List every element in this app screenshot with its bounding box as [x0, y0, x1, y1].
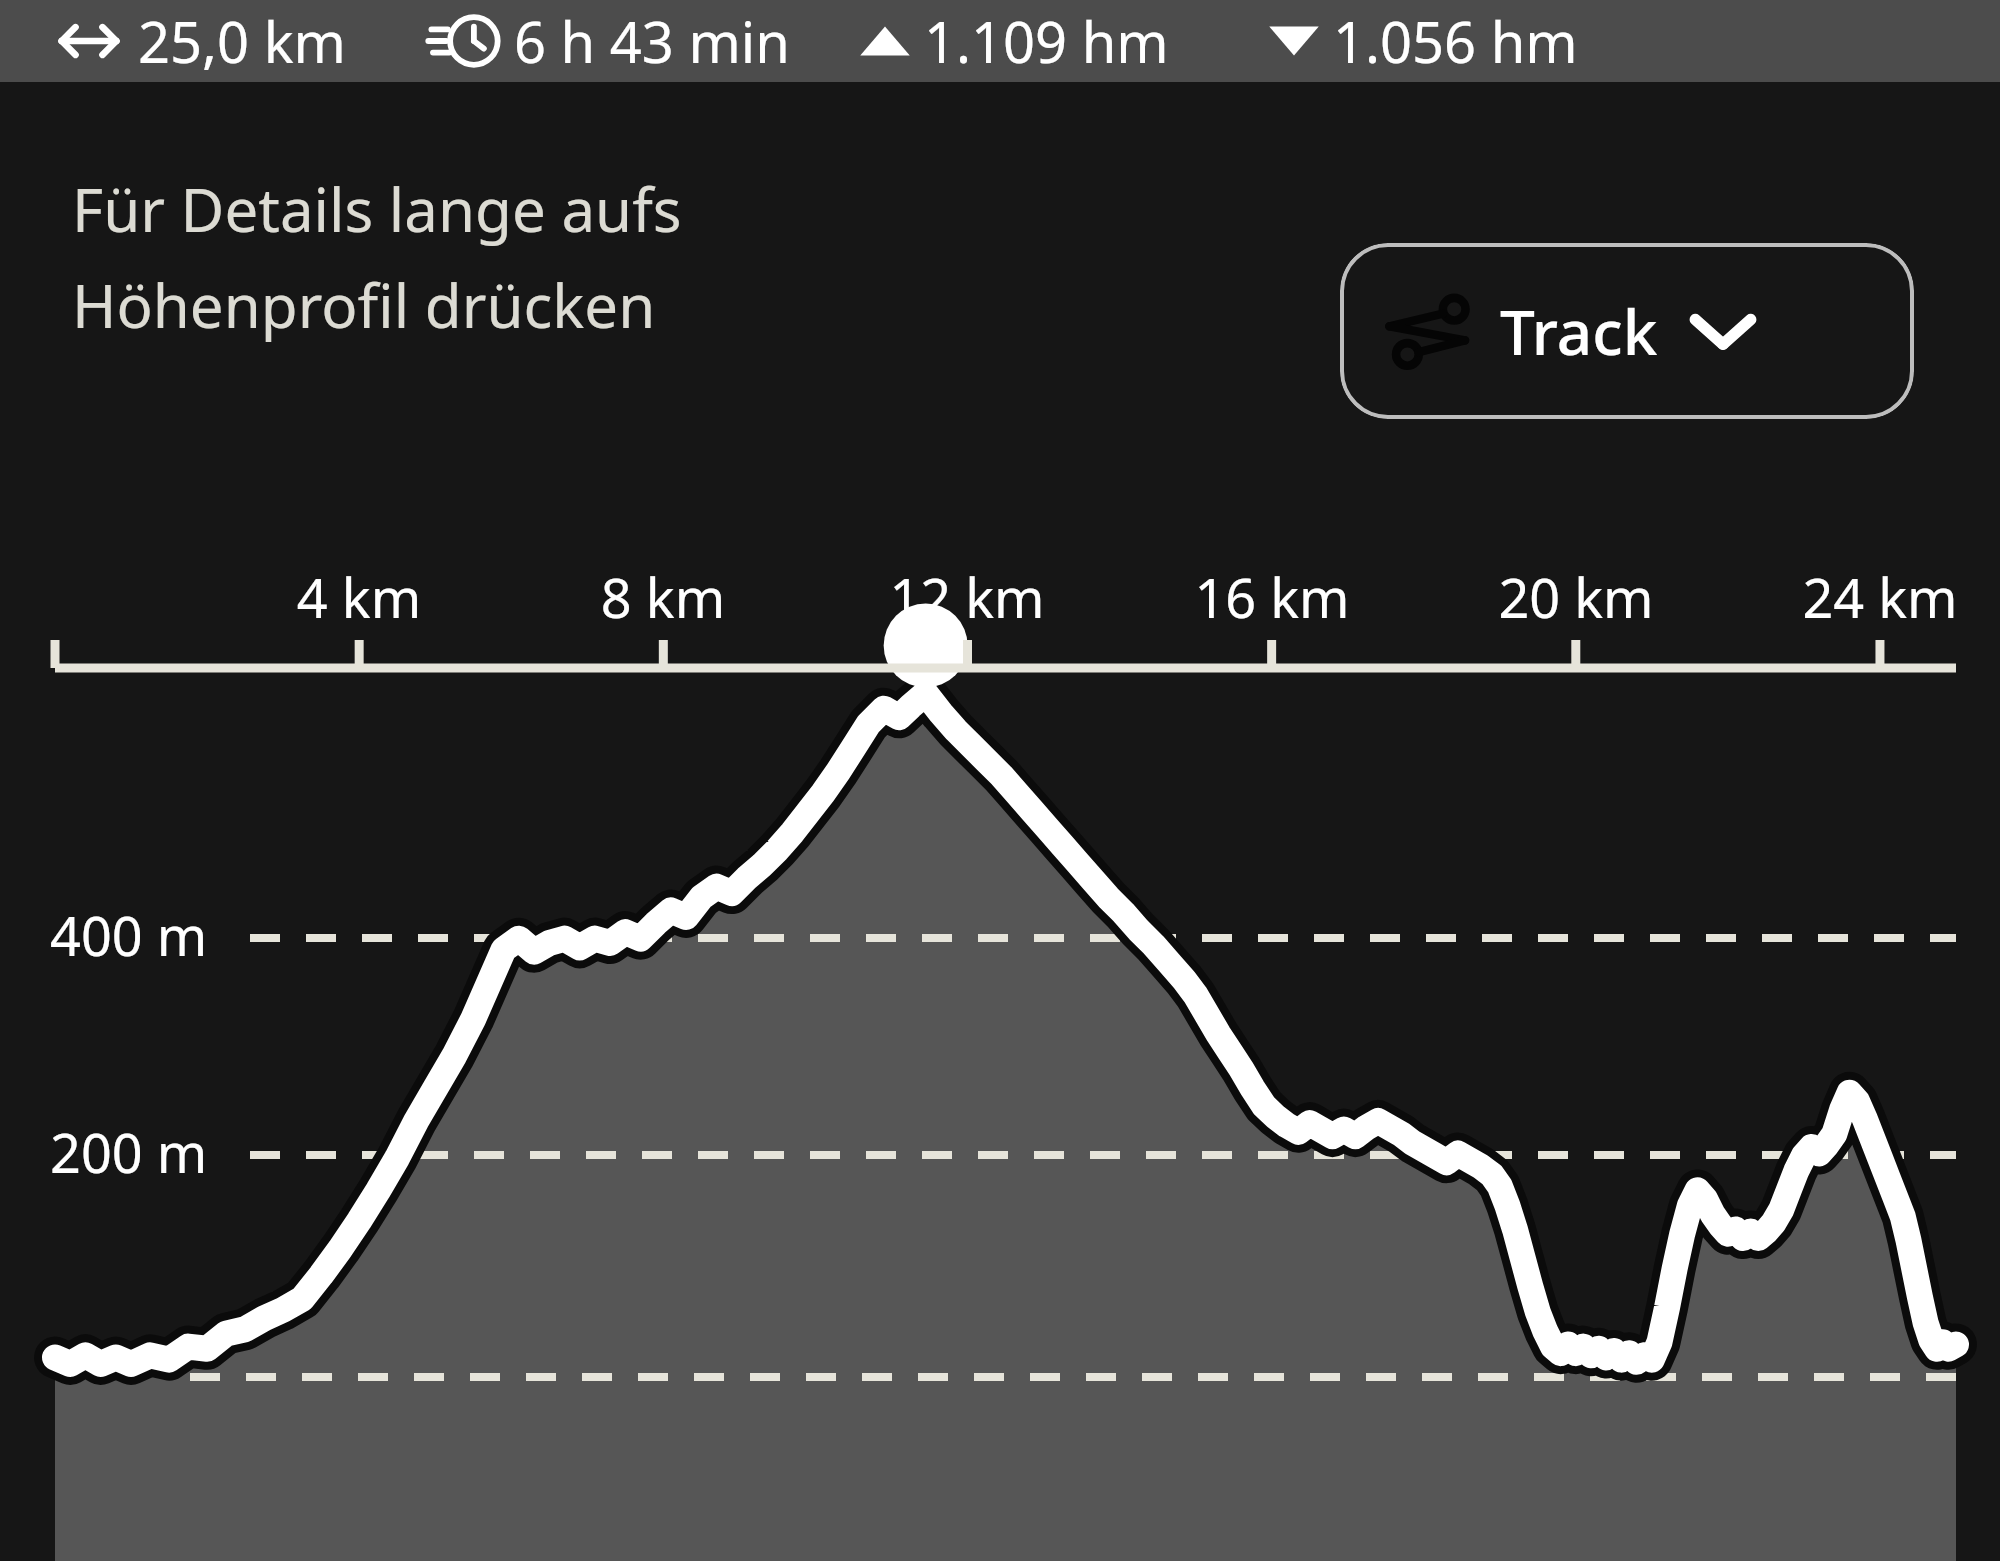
other: Distance: [58, 18, 120, 64]
staticText: 1.056 hm: [1333, 3, 1578, 79]
staticText: 8 km: [563, 560, 763, 634]
staticText: 400 m: [50, 898, 208, 972]
staticText: 4 km: [259, 560, 459, 634]
staticText: 24 km: [1780, 560, 1980, 634]
staticText: Für Details lange aufs: [72, 168, 682, 250]
staticText: Höhenprofil drücken: [72, 264, 656, 346]
other: Duration: [422, 12, 500, 70]
staticText: 20 km: [1476, 560, 1676, 634]
button[interactable]: Track: [1340, 243, 1914, 419]
staticText: Track: [1500, 289, 1658, 373]
staticText: 1.109 hm: [924, 3, 1169, 79]
staticText: 12 km: [867, 560, 1067, 634]
other: Ascent: [858, 21, 912, 61]
other: Descent: [1267, 21, 1321, 61]
staticText: 200 m: [50, 1115, 208, 1189]
staticText: 25,0 km: [138, 3, 346, 79]
staticText: 6 h 43 min: [514, 3, 790, 79]
staticText: 16 km: [1172, 560, 1372, 634]
